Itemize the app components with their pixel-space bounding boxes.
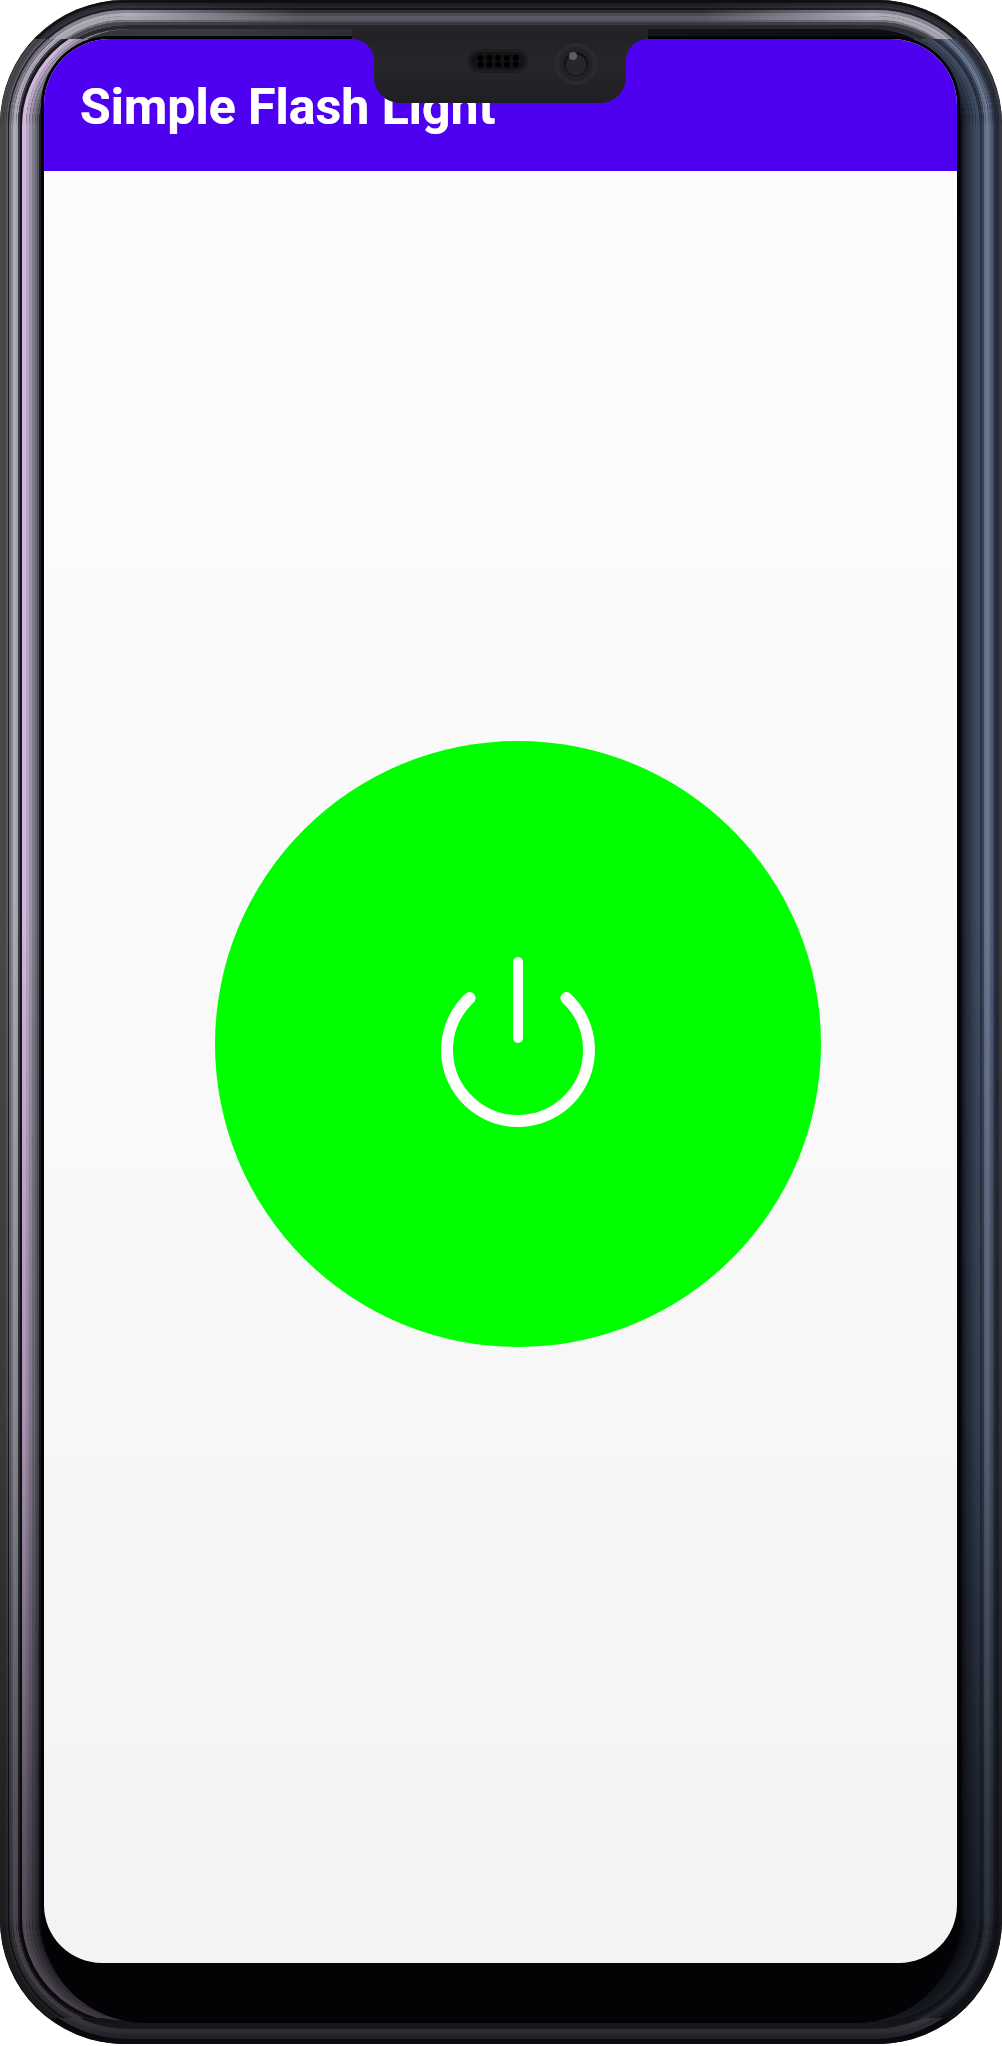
button[interactable]: Toggle flash light [215, 741, 821, 1347]
staticText: Simple Flash Light [80, 78, 496, 137]
